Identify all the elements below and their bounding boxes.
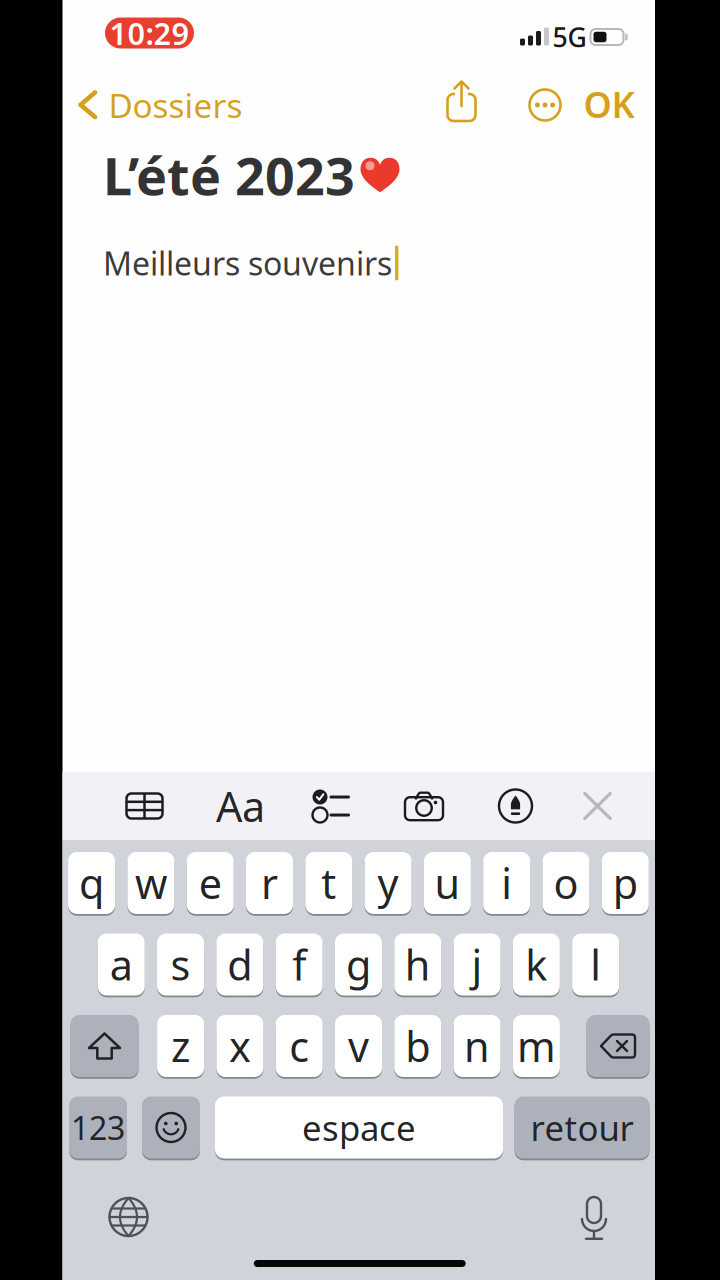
staticText: Dossiers bbox=[108, 83, 242, 127]
button[interactable]: g bbox=[335, 933, 382, 995]
button[interactable]: c bbox=[276, 1015, 323, 1077]
staticText: d bbox=[227, 937, 252, 992]
button[interactable]: Supprimer bbox=[586, 1015, 649, 1077]
button[interactable]: Émoji bbox=[142, 1096, 200, 1158]
staticText: f bbox=[292, 937, 306, 992]
button[interactable]: Partager bbox=[443, 80, 479, 124]
staticText: Aa bbox=[216, 779, 265, 833]
button[interactable]: a bbox=[98, 933, 145, 995]
staticText: k bbox=[525, 937, 547, 992]
button[interactable]: f bbox=[276, 933, 323, 995]
button[interactable]: p bbox=[602, 852, 649, 914]
staticText: n bbox=[464, 1019, 490, 1073]
button[interactable]: v bbox=[335, 1015, 382, 1077]
staticText: q bbox=[79, 856, 104, 910]
staticText: o bbox=[553, 856, 578, 910]
button[interactable]: n bbox=[454, 1015, 501, 1077]
button[interactable]: b bbox=[394, 1015, 441, 1077]
staticText: x bbox=[229, 1019, 251, 1073]
button[interactable]: e bbox=[187, 852, 234, 914]
staticText: g bbox=[346, 937, 371, 992]
staticText: OK bbox=[583, 80, 634, 128]
button[interactable]: s bbox=[157, 933, 204, 995]
button[interactable]: espace bbox=[215, 1096, 503, 1158]
staticText: a bbox=[110, 937, 133, 992]
button[interactable]: Annotation bbox=[490, 781, 540, 831]
button[interactable]: Fermer bbox=[583, 792, 612, 820]
button[interactable]: Changer de clavier bbox=[109, 1198, 147, 1236]
staticText: s bbox=[171, 937, 191, 992]
staticText: 10:29 bbox=[109, 13, 189, 53]
button[interactable]: y bbox=[365, 852, 412, 914]
staticText: 5G bbox=[552, 19, 586, 55]
staticText: retour bbox=[530, 1104, 633, 1150]
button[interactable]: t bbox=[305, 852, 352, 914]
button[interactable]: retour bbox=[514, 1096, 649, 1158]
button[interactable]: i bbox=[483, 852, 530, 914]
staticText: j bbox=[471, 937, 482, 992]
button[interactable]: q bbox=[68, 852, 115, 914]
staticText: b bbox=[405, 1019, 430, 1073]
staticText: espace bbox=[302, 1104, 416, 1150]
button[interactable]: Tableau bbox=[119, 781, 169, 831]
staticText: y bbox=[378, 856, 399, 910]
button[interactable]: j bbox=[453, 933, 500, 995]
button[interactable]: Plus d'options bbox=[525, 83, 565, 127]
button[interactable]: 10:29 bbox=[105, 17, 194, 48]
button[interactable]: Liste à puces bbox=[306, 781, 356, 831]
button[interactable]: Dictée bbox=[575, 1196, 613, 1240]
button[interactable]: l bbox=[572, 933, 619, 995]
staticText: h bbox=[405, 937, 431, 992]
button[interactable]: x bbox=[216, 1015, 263, 1077]
staticText: t bbox=[321, 856, 336, 910]
button[interactable]: 123 bbox=[69, 1096, 127, 1158]
button[interactable]: h bbox=[394, 933, 441, 995]
button[interactable]: z bbox=[157, 1015, 204, 1077]
staticText: r bbox=[261, 856, 278, 910]
staticText: c bbox=[289, 1019, 309, 1073]
staticText: e bbox=[199, 856, 222, 910]
button[interactable]: r bbox=[246, 852, 293, 914]
button[interactable]: d bbox=[216, 933, 263, 995]
staticText: 123 bbox=[71, 1106, 125, 1149]
button[interactable]: w bbox=[127, 852, 174, 914]
button[interactable]: m bbox=[513, 1015, 560, 1077]
button[interactable]: Photo bbox=[399, 781, 449, 831]
staticText: L’été 2023 bbox=[103, 140, 355, 210]
staticText: z bbox=[171, 1019, 190, 1073]
button[interactable]: OK bbox=[583, 82, 634, 126]
staticText: p bbox=[613, 856, 638, 910]
button[interactable]: o bbox=[542, 852, 589, 914]
staticText: i bbox=[501, 856, 512, 910]
button[interactable]: Maj bbox=[70, 1015, 138, 1077]
staticText: u bbox=[434, 856, 460, 910]
staticText: m bbox=[517, 1019, 556, 1073]
staticText: v bbox=[348, 1019, 369, 1073]
staticText: l bbox=[590, 937, 601, 992]
staticText: w bbox=[135, 856, 167, 910]
button[interactable]: Format bbox=[215, 781, 265, 831]
staticText: Meilleurs souvenirs bbox=[103, 242, 392, 284]
button[interactable]: k bbox=[513, 933, 560, 995]
button[interactable]: Dossiers bbox=[77, 83, 242, 127]
button[interactable]: u bbox=[424, 852, 471, 914]
